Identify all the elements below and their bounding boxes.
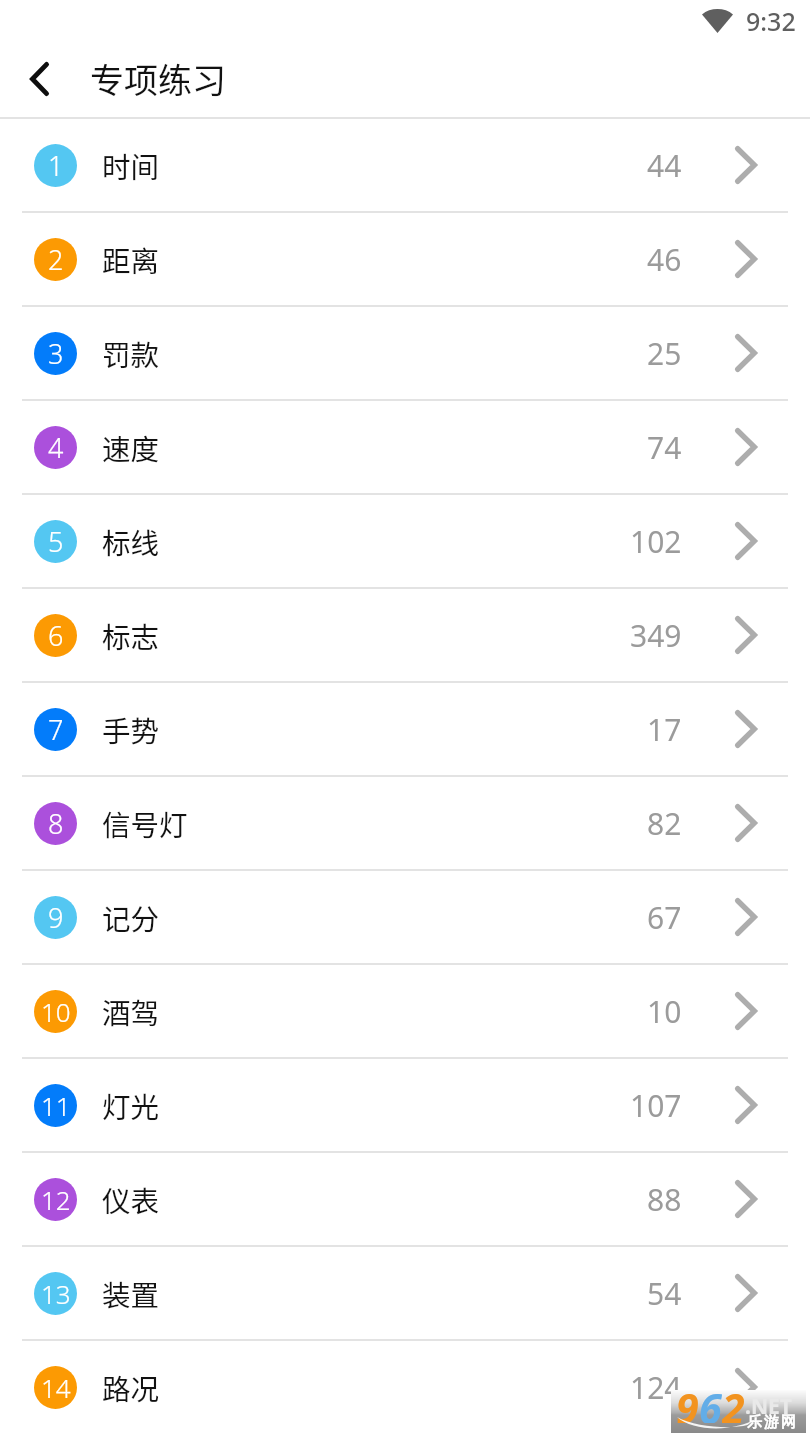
staticText: .NET bbox=[745, 1392, 792, 1421]
button[interactable]: 4 bbox=[0, 401, 810, 493]
staticText: 46 bbox=[647, 239, 682, 280]
staticText: 10 bbox=[647, 991, 682, 1032]
staticText: 5 bbox=[48, 523, 64, 560]
staticText: 罚款 bbox=[102, 333, 160, 374]
staticText: 乐 bbox=[747, 1413, 762, 1432]
staticText: 82 bbox=[647, 803, 682, 844]
staticText: 灯光 bbox=[102, 1085, 160, 1126]
staticText: 3 bbox=[48, 335, 64, 372]
button[interactable]: 14 bbox=[0, 1341, 810, 1433]
staticText: 13 bbox=[41, 1276, 71, 1311]
staticText: 7 bbox=[48, 711, 64, 748]
staticText: 距离 bbox=[102, 239, 160, 280]
staticText: 14 bbox=[41, 1370, 71, 1405]
button[interactable]: 8 bbox=[0, 777, 810, 869]
staticText: 102 bbox=[630, 521, 682, 562]
button[interactable]: 9 bbox=[0, 871, 810, 963]
staticText: 1 bbox=[48, 147, 64, 184]
staticText: 2 bbox=[48, 241, 64, 278]
staticText: 记分 bbox=[102, 897, 160, 938]
button[interactable]: 2 bbox=[0, 213, 810, 305]
staticText: 酒驾 bbox=[102, 991, 160, 1032]
staticText: 6 bbox=[48, 617, 64, 654]
staticText: 11 bbox=[41, 1088, 71, 1123]
staticText: 107 bbox=[630, 1085, 682, 1126]
staticText: 标线 bbox=[102, 521, 160, 562]
staticText: 44 bbox=[647, 145, 682, 186]
button[interactable]: 12 bbox=[0, 1153, 810, 1245]
staticText: 信号灯 bbox=[102, 803, 188, 844]
button[interactable]: 3 bbox=[0, 307, 810, 399]
staticText: 9 bbox=[48, 899, 64, 936]
staticText: 速度 bbox=[102, 427, 160, 468]
button[interactable]: 11 bbox=[0, 1059, 810, 1151]
button[interactable]: 7 bbox=[0, 683, 810, 775]
staticText: 67 bbox=[647, 897, 682, 938]
staticText: 装置 bbox=[102, 1273, 160, 1314]
staticText: 路况 bbox=[102, 1367, 160, 1408]
staticText: 12 bbox=[41, 1182, 71, 1217]
staticText: 6 bbox=[699, 1380, 722, 1423]
staticText: 专项练习 bbox=[90, 54, 226, 103]
staticText: 游 bbox=[764, 1413, 779, 1432]
staticText: 25 bbox=[647, 333, 682, 374]
button[interactable]: Back bbox=[6, 46, 72, 112]
staticText: 124 bbox=[630, 1367, 682, 1408]
staticText: 手势 bbox=[102, 709, 160, 750]
button[interactable]: 1 bbox=[0, 119, 810, 211]
button[interactable]: 6 bbox=[0, 589, 810, 681]
staticText: 9 bbox=[676, 1380, 699, 1423]
staticText: 74 bbox=[647, 427, 682, 468]
staticText: 54 bbox=[647, 1273, 682, 1314]
staticText: 9:32 bbox=[746, 4, 796, 38]
staticText: 网 bbox=[781, 1413, 796, 1432]
staticText: 2 bbox=[722, 1380, 745, 1423]
staticText: 88 bbox=[647, 1179, 682, 1220]
staticText: 10 bbox=[41, 994, 71, 1029]
staticText: 17 bbox=[647, 709, 682, 750]
staticText: 标志 bbox=[102, 615, 160, 656]
staticText: 8 bbox=[48, 805, 64, 842]
button[interactable]: 5 bbox=[0, 495, 810, 587]
staticText: 349 bbox=[630, 615, 682, 656]
staticText: 4 bbox=[48, 429, 64, 466]
button[interactable]: 13 bbox=[0, 1247, 810, 1339]
staticText: 仪表 bbox=[102, 1179, 160, 1220]
button[interactable]: 10 bbox=[0, 965, 810, 1057]
staticText: 时间 bbox=[102, 145, 160, 186]
